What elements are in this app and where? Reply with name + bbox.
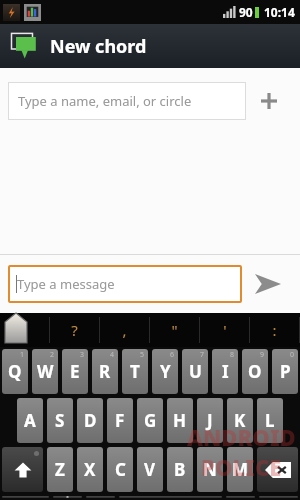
staticText: 5: [140, 350, 145, 360]
staticText: ,: [98, 496, 103, 498]
button[interactable]: ?123: [2, 496, 49, 498]
button[interactable]: Q: [2, 349, 28, 394]
staticText: ,: [122, 320, 127, 340]
staticText: W: [37, 360, 54, 383]
staticText: 90: [239, 4, 253, 20]
button[interactable]: Send: [242, 258, 294, 310]
staticText: :: [272, 320, 277, 340]
staticText: ANDROID: [187, 422, 296, 452]
button[interactable]: Type a message: [8, 265, 242, 303]
staticText: C: [115, 458, 126, 481]
button[interactable]: O: [242, 349, 268, 394]
button[interactable]: ': [200, 313, 249, 347]
staticText: ": [171, 320, 178, 340]
staticText: K: [234, 409, 246, 432]
button[interactable]: K: [227, 398, 253, 443]
button[interactable]: Y: [152, 349, 178, 394]
button[interactable]: [2, 447, 43, 492]
button[interactable]: T: [122, 349, 148, 394]
staticText: 6: [170, 350, 175, 360]
staticText: 4: [110, 350, 115, 360]
button[interactable]: !: [0, 313, 49, 347]
staticText: !: [22, 320, 27, 340]
staticText: N: [203, 458, 217, 481]
button[interactable]: D: [77, 398, 103, 443]
staticText: D: [84, 409, 97, 432]
staticText: .: [238, 496, 243, 498]
staticText: B: [174, 458, 186, 481]
button[interactable]: G: [137, 398, 163, 443]
staticText: 0: [290, 350, 295, 360]
button[interactable]: :: [250, 313, 299, 347]
staticText: L: [265, 409, 275, 432]
staticText: F: [115, 409, 125, 432]
staticText: X: [84, 458, 96, 481]
button[interactable]: I: [212, 349, 238, 394]
button[interactable]: ?: [50, 313, 99, 347]
staticText: U: [189, 360, 202, 383]
button[interactable]: ,: [86, 496, 115, 498]
staticText: P: [280, 360, 291, 383]
staticText: 8: [230, 350, 235, 360]
button[interactable]: M: [227, 447, 253, 492]
staticText: M: [232, 458, 249, 481]
staticText: ': [223, 320, 227, 340]
button[interactable]: [53, 496, 82, 498]
staticText: E: [70, 360, 80, 383]
button[interactable]: U: [182, 349, 208, 394]
button[interactable]: X: [77, 447, 103, 492]
staticText: New chord: [50, 34, 147, 59]
staticText: O: [248, 360, 262, 383]
button[interactable]: ": [150, 313, 199, 347]
button[interactable]: J: [197, 398, 223, 443]
button[interactable]: A: [17, 398, 43, 443]
button[interactable]: L: [257, 398, 283, 443]
button[interactable]: N: [197, 447, 223, 492]
button[interactable]: .: [226, 496, 255, 498]
staticText: G: [144, 409, 157, 432]
staticText: I: [222, 360, 229, 383]
staticText: Z: [55, 458, 65, 481]
button[interactable]: S: [47, 398, 73, 443]
staticText: Type a name, email, or circle: [18, 92, 192, 110]
staticText: 2: [50, 350, 55, 360]
button[interactable]: [119, 496, 222, 498]
staticText: ?: [71, 320, 78, 340]
button[interactable]: V: [137, 447, 163, 492]
staticText: R: [99, 360, 111, 383]
button[interactable]: E: [62, 349, 88, 394]
staticText: V: [144, 458, 156, 481]
button[interactable]: R: [92, 349, 118, 394]
staticText: A: [24, 409, 36, 432]
button[interactable]: [257, 447, 298, 492]
button[interactable]: Z: [47, 447, 73, 492]
staticText: POLICE: [201, 452, 282, 482]
button[interactable]: C: [107, 447, 133, 492]
staticText: H: [173, 409, 187, 432]
staticText: :-): [272, 496, 285, 498]
button[interactable]: W: [32, 349, 58, 394]
button[interactable]: Add recipient: [246, 78, 292, 124]
staticText: T: [130, 360, 140, 383]
button[interactable]: :-): [259, 496, 298, 498]
button[interactable]: ,: [100, 313, 149, 347]
staticText: S: [55, 409, 65, 432]
staticText: J: [207, 409, 213, 432]
button[interactable]: B: [167, 447, 193, 492]
button[interactable]: P: [272, 349, 298, 394]
staticText: Y: [160, 360, 171, 383]
staticText: Q: [8, 360, 22, 383]
button[interactable]: Type a name, email, or circle: [8, 82, 246, 120]
staticText: 1: [20, 350, 25, 360]
staticText: 3: [80, 350, 85, 360]
staticText: Type a message: [17, 275, 115, 293]
staticText: 10:14: [264, 4, 295, 20]
staticText: 7: [200, 350, 205, 360]
staticText: ?123: [10, 496, 41, 498]
button[interactable]: H: [167, 398, 193, 443]
button[interactable]: F: [107, 398, 133, 443]
staticText: 9: [260, 350, 265, 360]
